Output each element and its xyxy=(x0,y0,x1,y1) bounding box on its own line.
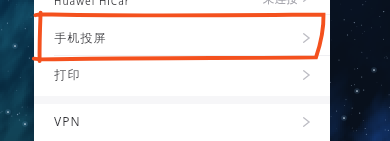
staticText: 打印 xyxy=(54,67,80,82)
button[interactable]: Huawei HiCar xyxy=(34,0,330,15)
staticText: 未连接 xyxy=(263,0,298,7)
staticText: 手机投屏 xyxy=(54,30,106,45)
button[interactable]: 打印 xyxy=(34,55,330,93)
staticText: VPN xyxy=(54,113,81,129)
button[interactable]: 手机投屏 xyxy=(34,18,330,56)
staticText: Huawei HiCar xyxy=(54,0,130,8)
button[interactable]: VPN xyxy=(34,102,330,140)
